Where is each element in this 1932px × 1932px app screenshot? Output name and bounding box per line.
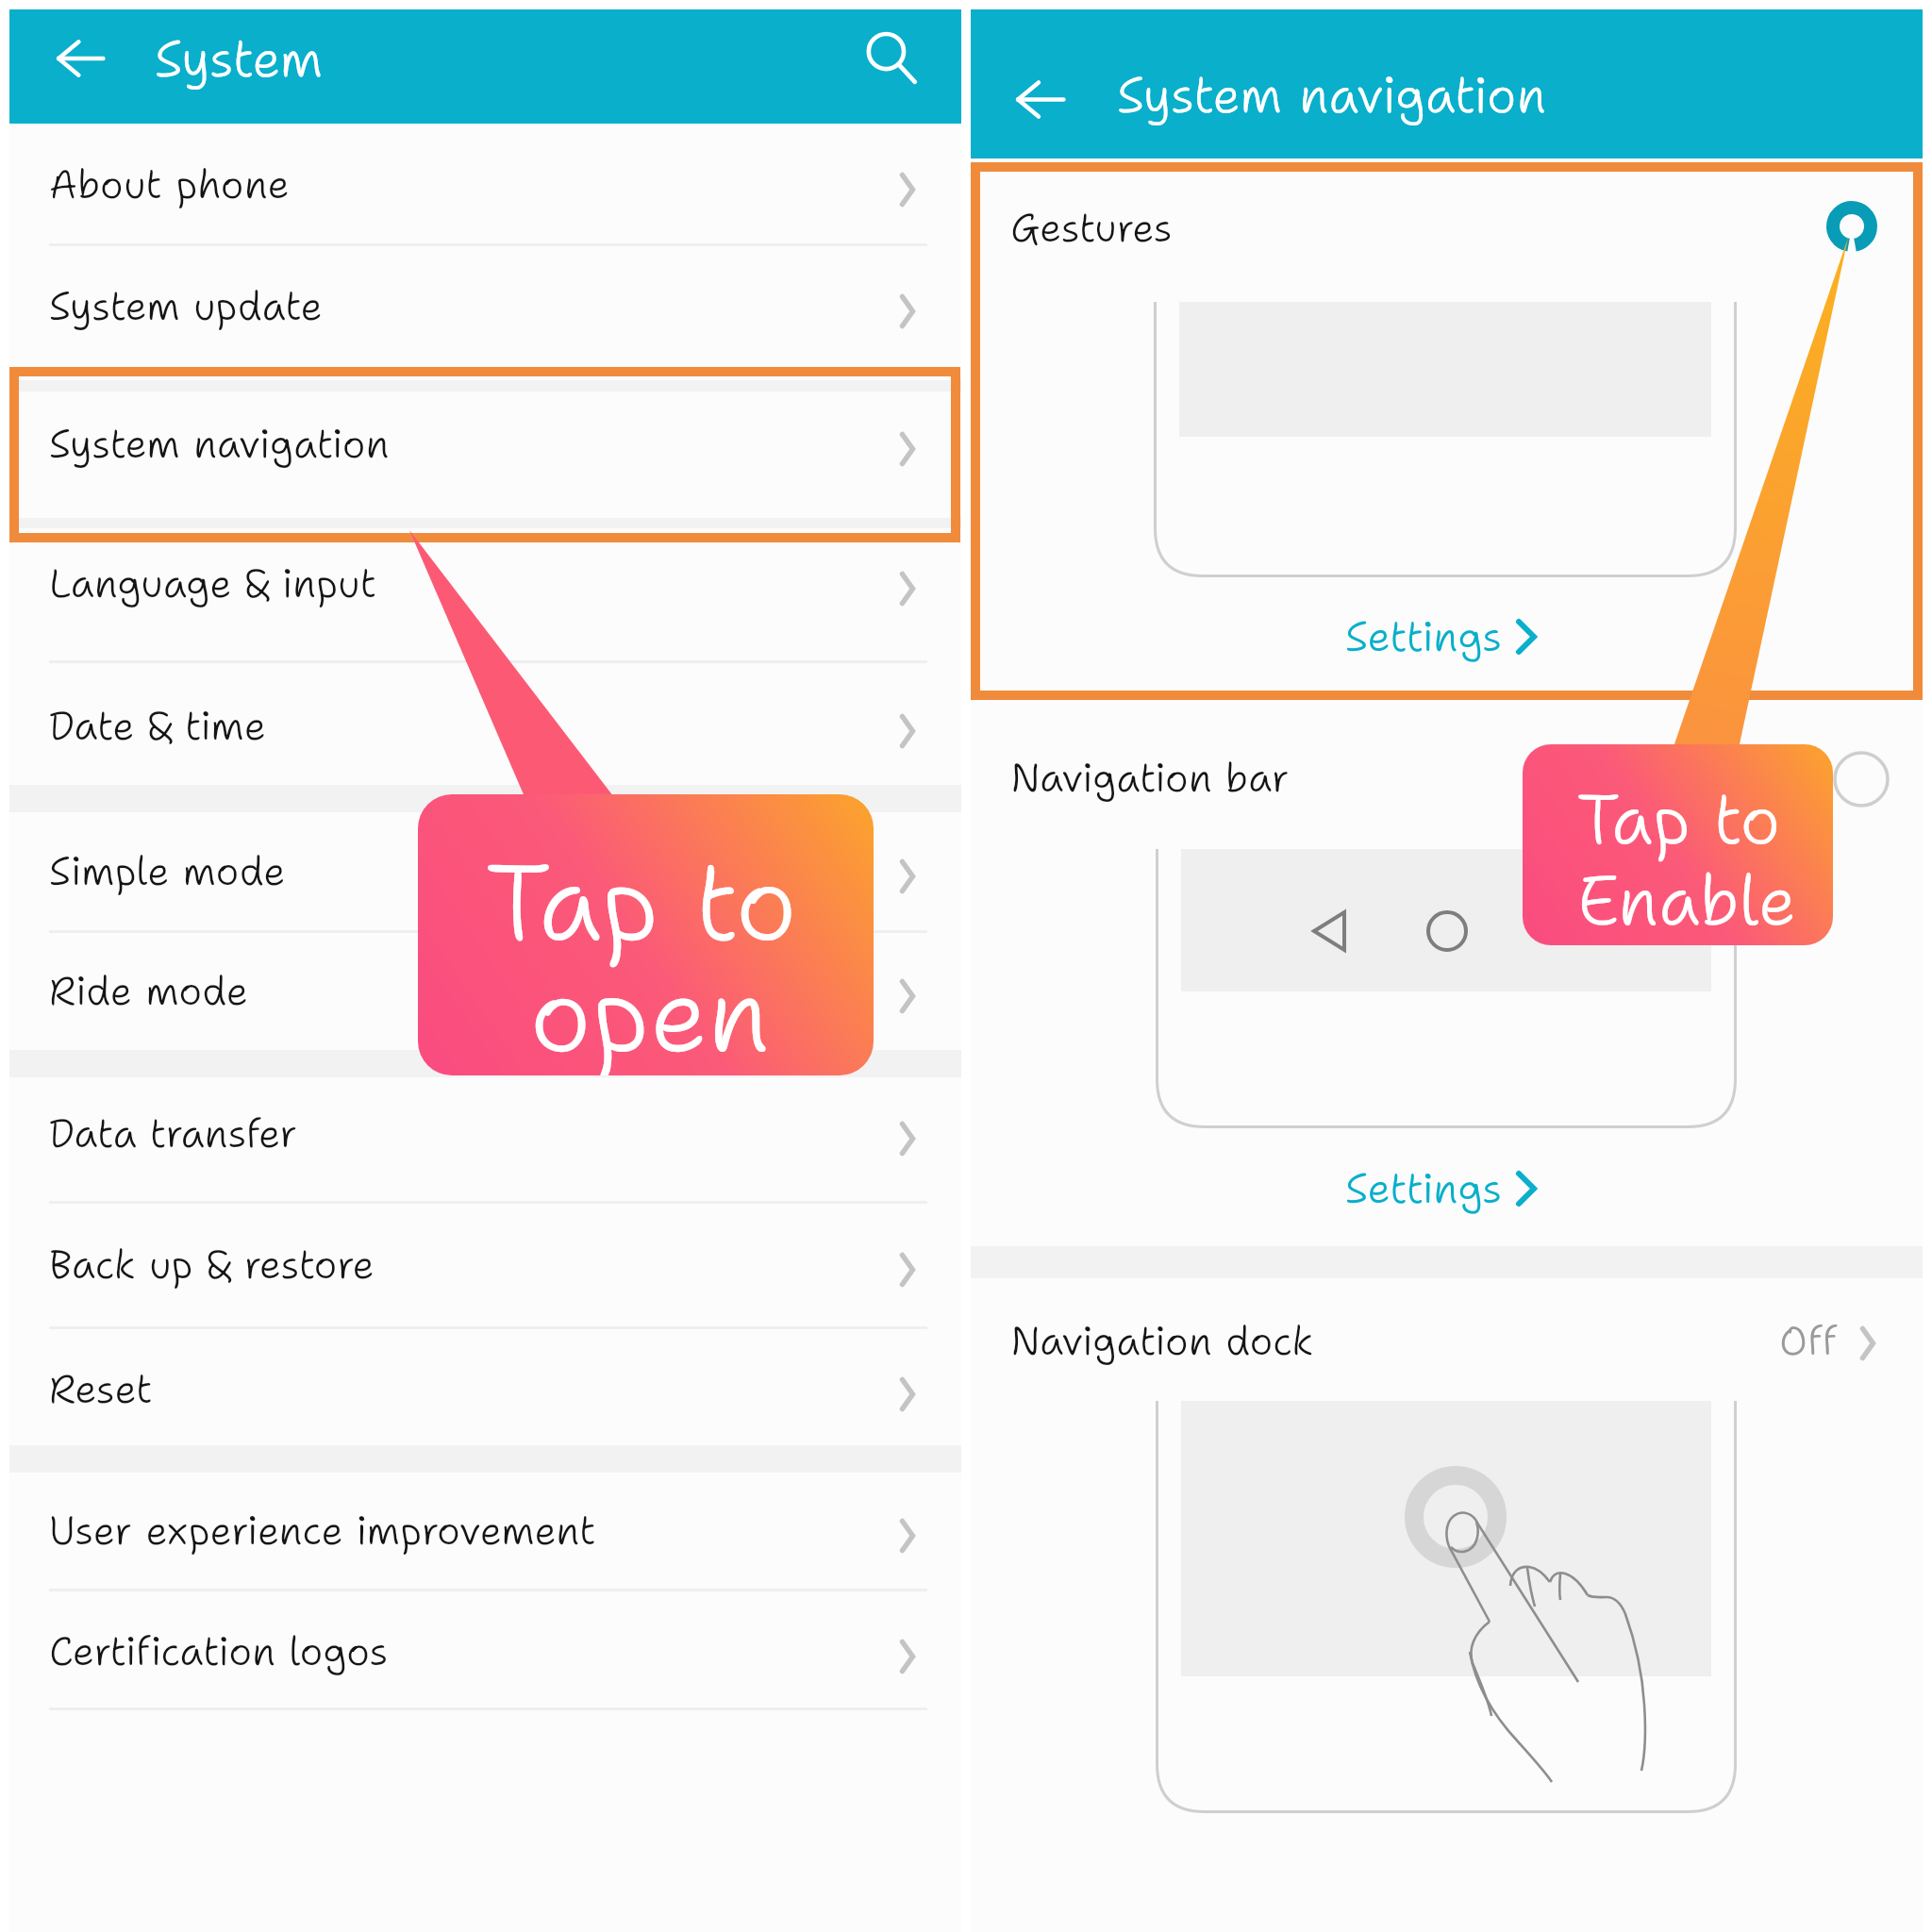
button[interactable]: Tap to [1523,744,1833,945]
staticText: Settings [1345,1160,1503,1216]
button[interactable]: System update [9,245,961,366]
button[interactable]: Settings [1290,1155,1591,1221]
staticText: Date & time [49,699,266,752]
button[interactable]: Data transfer [9,1073,961,1193]
staticText: Data transfer [49,1107,298,1159]
button[interactable]: Certification logos [9,1591,961,1711]
staticText: User experience improvement [49,1504,596,1557]
button[interactable]: Back [988,47,1091,151]
button[interactable]: About phone [9,124,961,244]
staticText: open [529,943,771,1075]
button[interactable]: Settings [1290,603,1591,669]
staticText: Navigation dock [1010,1314,1314,1367]
button[interactable]: Date & time [9,665,961,786]
button[interactable]: Ride mode [9,930,961,1051]
staticText: System [155,25,324,92]
staticText: System navigation [49,417,390,470]
staticText: Enable [1577,855,1797,945]
staticText: About phone [49,158,290,210]
staticText: Settings [1345,608,1503,664]
staticText: Certification logos [49,1624,389,1677]
button[interactable]: System navigation [9,383,961,504]
staticText: Language & input [49,557,377,609]
staticText: Gestures [1010,201,1173,254]
staticText: System navigation [1117,61,1546,128]
button[interactable]: Language & input [9,523,961,643]
button[interactable]: Reset [9,1328,961,1449]
staticText: Reset [49,1362,153,1415]
button[interactable]: Simple mode [9,810,961,931]
staticText: Back up & restore [49,1238,375,1291]
button[interactable]: Back up & restore [9,1204,961,1324]
staticText: Simple mode [49,844,286,897]
button[interactable]: Search [840,7,943,110]
staticText: Off [1779,1314,1837,1367]
staticText: Tap to [486,832,798,974]
button[interactable]: Back [28,7,132,110]
staticText: System update [49,279,323,332]
button[interactable]: Tap to [418,794,874,1075]
staticText: Ride mode [49,964,248,1017]
button[interactable]: Gestures selected [1810,185,1893,268]
button[interactable]: User experience improvement [9,1470,961,1591]
button[interactable]: Navigation bar option [1820,738,1903,821]
staticText: Tap to [1577,774,1781,866]
staticText: Navigation bar [1010,751,1290,804]
